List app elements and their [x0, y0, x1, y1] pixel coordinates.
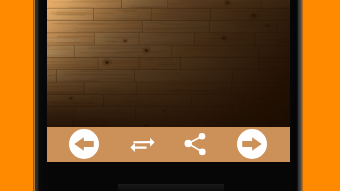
button[interactable]: Share	[183, 131, 207, 158]
button[interactable]: Previous	[69, 129, 99, 159]
button[interactable]: Next	[237, 129, 267, 159]
button[interactable]: Swap	[128, 131, 158, 158]
